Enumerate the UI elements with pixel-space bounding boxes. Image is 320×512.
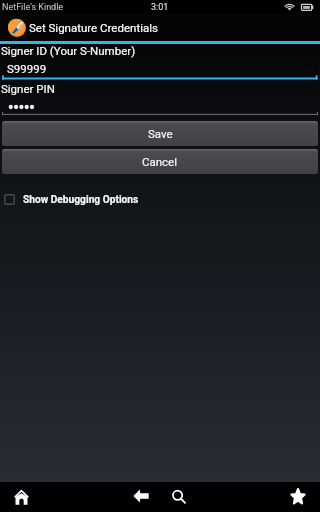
button[interactable]: Set Signature Credentials	[0, 14, 320, 41]
button[interactable]: Search	[163, 482, 197, 512]
staticText: Signer PIN	[1, 82, 55, 95]
staticText: Cancel	[142, 155, 178, 168]
button[interactable]: Home	[0, 482, 44, 512]
staticText: NetFile's Kindle	[2, 2, 64, 13]
button[interactable]: Favorites	[276, 482, 320, 512]
staticText: Set Signature Credentials	[29, 21, 158, 34]
button[interactable]: Back	[123, 482, 159, 512]
staticText: Show Debugging Options	[23, 194, 139, 206]
button[interactable]: Cancel	[2, 149, 318, 174]
staticText: Signer ID (Your S-Number)	[1, 44, 136, 57]
staticText: S99999	[7, 62, 47, 75]
staticText: 3:01	[151, 2, 169, 13]
button[interactable]: Save	[2, 121, 318, 146]
staticText: Save	[148, 127, 173, 140]
button[interactable]: Show Debugging Options	[0, 188, 142, 208]
